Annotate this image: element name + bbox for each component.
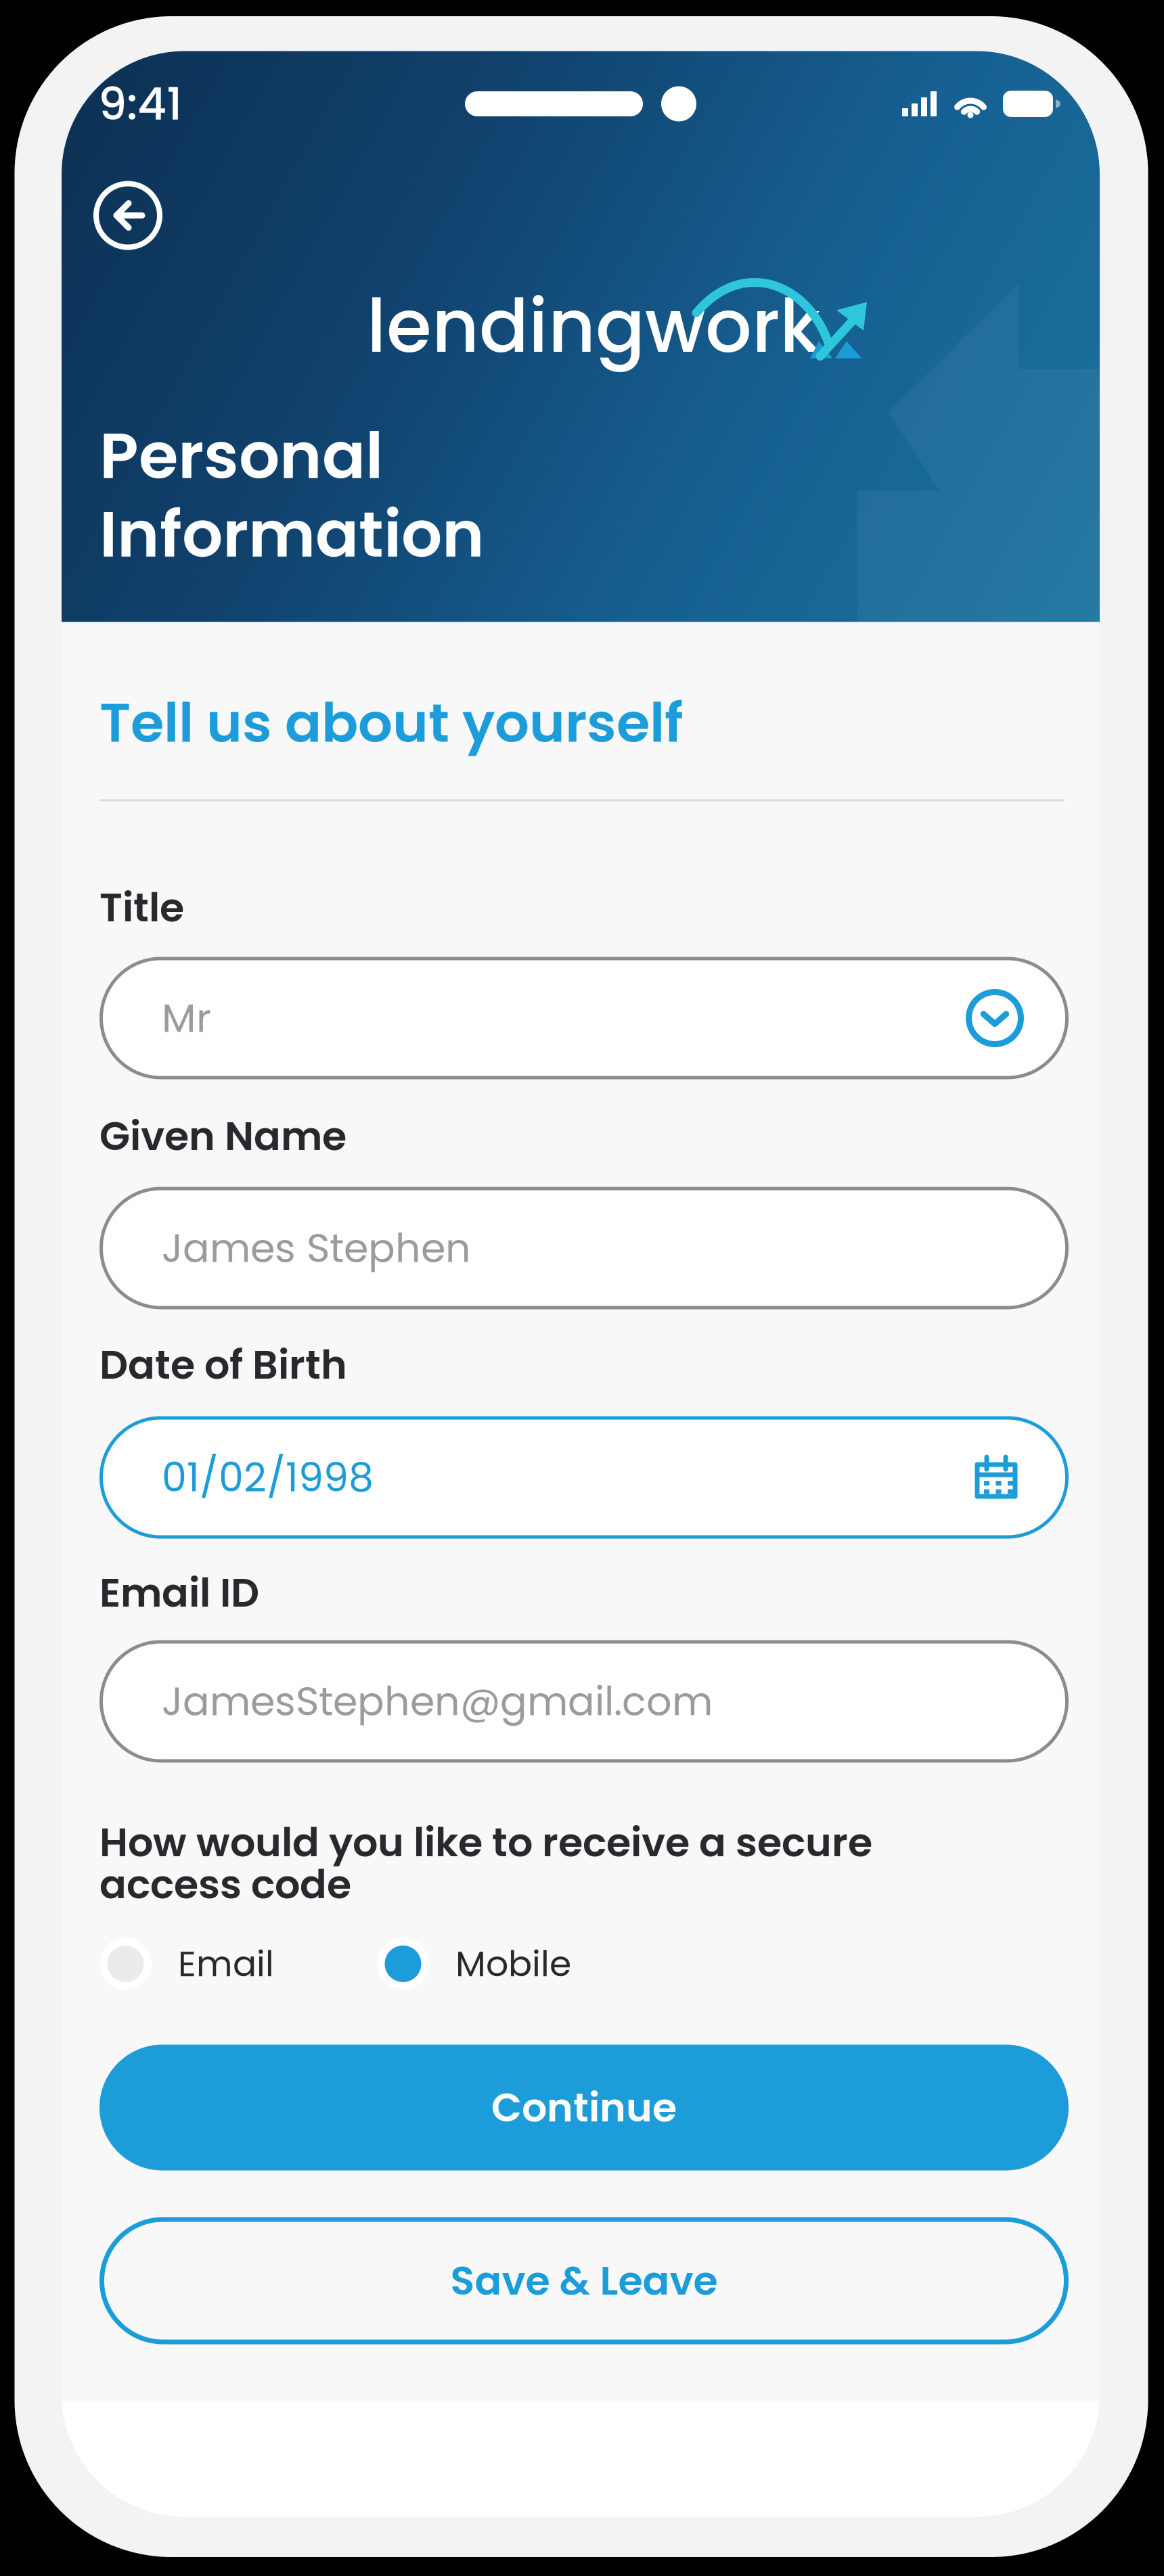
button[interactable]: Continue: [99, 2045, 1069, 2170]
button[interactable]: Email: [99, 1938, 274, 1990]
staticText: lendingwork: [367, 275, 820, 377]
staticText: Personal: [99, 411, 383, 500]
staticText: Date of Birth: [99, 1337, 347, 1393]
staticText: How would you like to receive a secure: [99, 1815, 872, 1870]
staticText: Information: [99, 489, 485, 579]
staticText: Given Name: [99, 1108, 346, 1164]
staticText: 9:41: [98, 72, 182, 135]
staticText: Title: [99, 880, 184, 935]
staticText: Email: [178, 1939, 274, 1988]
staticText: access code: [99, 1857, 351, 1912]
staticText: 01/02/1998: [162, 1450, 374, 1505]
staticText: Mr: [162, 990, 211, 1046]
button[interactable]: Mobile: [377, 1938, 571, 1990]
button[interactable]: Save & Leave: [99, 2217, 1069, 2344]
staticText: JamesStephen@gmail.com: [162, 1674, 713, 1729]
staticText: Mobile: [455, 1939, 571, 1988]
button[interactable]: Back: [93, 181, 162, 250]
staticText: Tell us about yourself: [99, 685, 684, 761]
staticText: Save & Leave: [450, 2253, 718, 2308]
staticText: Continue: [491, 2080, 677, 2135]
staticText: James Stephen: [162, 1220, 471, 1276]
staticText: Email ID: [99, 1565, 259, 1621]
